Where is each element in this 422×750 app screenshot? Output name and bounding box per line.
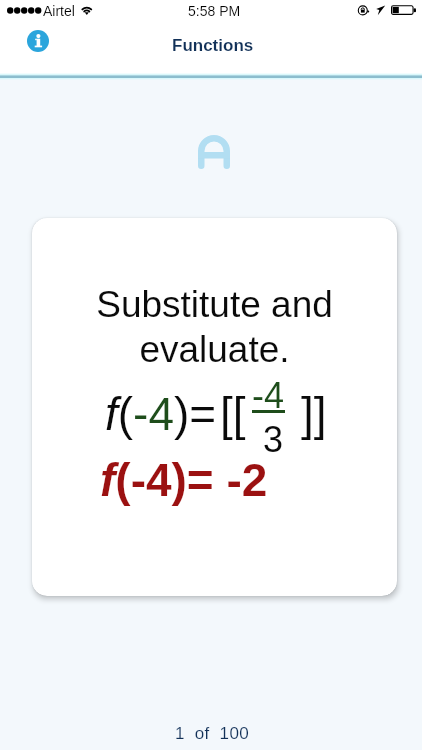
staticText: Functions (172, 36, 254, 55)
staticText: Airtel (43, 3, 75, 19)
staticText: ]] (301, 388, 327, 439)
staticText: f(-4)= -2 (100, 454, 268, 505)
staticText: [[ (220, 388, 246, 439)
staticText: f(-4)= (105, 388, 217, 439)
button[interactable]: Substitute and evaluate. (32, 218, 397, 596)
staticText: -4 (252, 375, 285, 415)
button[interactable]: Info (27, 30, 49, 52)
staticText: Substitute and evaluate. (32, 284, 397, 370)
staticText: 3 (263, 419, 284, 459)
staticText: 1 of 100 (175, 724, 249, 743)
staticText: 5:58 PM (188, 3, 241, 19)
